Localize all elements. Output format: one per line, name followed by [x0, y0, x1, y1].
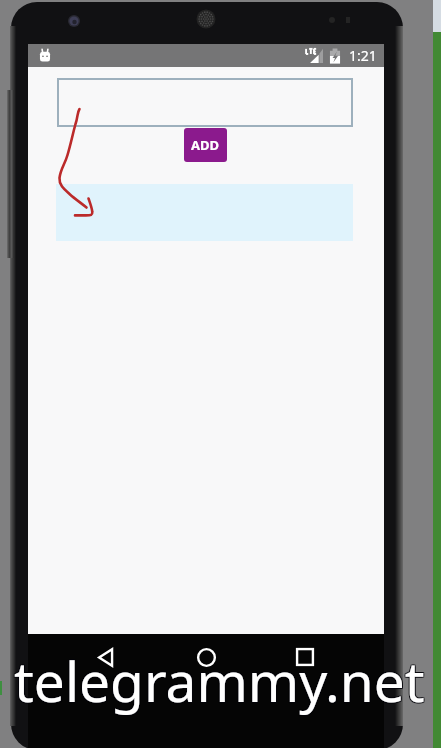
staticText: telegrammy.net [15, 642, 426, 717]
button[interactable]: Back [90, 641, 122, 673]
staticText: telegrammy.net [14, 644, 425, 719]
staticText: 1:21 [349, 46, 377, 65]
staticText: telegrammy.net [15, 643, 426, 718]
staticText: telegrammy.net [14, 642, 425, 717]
staticText: telegrammy.net [13, 642, 424, 717]
staticText: telegrammy.net [13, 643, 424, 718]
staticText: ADD [191, 136, 220, 154]
staticText: telegrammy.net [15, 644, 426, 719]
button[interactable]: Recents [289, 641, 321, 673]
staticText: telegrammy.net [13, 644, 424, 719]
button[interactable] [56, 184, 353, 241]
staticText: telegrammy.net [14, 643, 425, 718]
button[interactable] [57, 78, 353, 127]
button[interactable]: ADD [184, 128, 227, 162]
button[interactable]: Home [190, 641, 222, 673]
